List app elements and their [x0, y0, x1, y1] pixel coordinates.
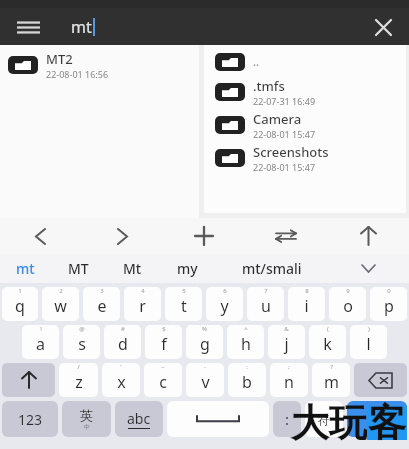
button[interactable]: 0	[370, 287, 407, 321]
staticText: b	[242, 371, 252, 393]
button[interactable]: $	[145, 325, 182, 359]
staticText: 9	[346, 287, 350, 295]
staticText: l	[366, 333, 371, 355]
staticText: Screenshots	[253, 143, 329, 161]
button[interactable]: Clear search	[366, 10, 400, 44]
button[interactable]: 2	[42, 287, 79, 321]
staticText: v	[201, 371, 210, 393]
staticText: '	[120, 363, 122, 371]
button[interactable]: Shift	[2, 363, 55, 397]
staticText: Camera	[253, 110, 302, 128]
staticText: i	[304, 295, 309, 317]
button[interactable]: mt	[0, 254, 50, 283]
button[interactable]: (	[309, 325, 346, 359]
staticText: 3	[100, 287, 104, 295]
staticText: y	[220, 295, 229, 317]
button[interactable]: Backspace	[354, 363, 407, 397]
staticText: 1	[18, 287, 22, 295]
button[interactable]: 7	[247, 287, 284, 321]
button[interactable]: @	[63, 325, 100, 359]
button[interactable]: MT2	[0, 48, 199, 81]
button[interactable]: mt/smali	[216, 254, 328, 283]
button[interactable]: 8	[288, 287, 325, 321]
staticText: 2	[59, 287, 63, 295]
button[interactable]: ^	[227, 325, 264, 359]
button[interactable]: Up	[327, 218, 409, 254]
button[interactable]: Camera	[204, 108, 406, 141]
staticText: 7	[264, 287, 268, 295]
button[interactable]: Screenshots	[204, 141, 406, 174]
button[interactable]: New	[163, 218, 245, 254]
button[interactable]: Swap panels	[245, 218, 327, 254]
staticText: 22-08-01 15:47	[253, 128, 316, 140]
button[interactable]: :	[228, 363, 266, 397]
staticText: ;	[288, 363, 290, 371]
staticText: 客	[368, 399, 406, 447]
staticText: r	[139, 295, 146, 317]
staticText: q	[15, 295, 25, 317]
button[interactable]: ?	[312, 363, 350, 397]
button[interactable]: 4	[124, 287, 161, 321]
button[interactable]: 6	[206, 287, 243, 321]
button[interactable]: .tmfs	[204, 75, 406, 108]
staticText: 22-07-31 16:49	[253, 95, 316, 107]
staticText: MT2	[46, 50, 73, 68]
button[interactable]: 5	[165, 287, 202, 321]
button[interactable]: #	[104, 325, 141, 359]
staticText: ..	[253, 54, 259, 69]
staticText: 8	[305, 287, 309, 295]
staticText: 中	[84, 423, 90, 431]
staticText: /	[77, 363, 80, 371]
staticText: ^	[244, 325, 248, 333]
button[interactable]: ;	[270, 363, 308, 397]
button[interactable]: Symbols	[305, 401, 343, 437]
staticText: .tmfs	[253, 77, 285, 95]
staticText: w	[54, 295, 67, 317]
button[interactable]: %	[186, 325, 223, 359]
staticText: (	[327, 325, 329, 333]
staticText: 5	[182, 287, 186, 295]
button[interactable]: )	[350, 325, 387, 359]
staticText: x	[117, 371, 126, 393]
button[interactable]: &	[268, 325, 305, 359]
staticText: -	[204, 363, 206, 371]
button[interactable]: 123	[2, 401, 58, 437]
button[interactable]: -	[186, 363, 224, 397]
staticText: a	[36, 333, 45, 355]
button[interactable]: Space	[167, 401, 269, 437]
button[interactable]: 9	[329, 287, 366, 321]
staticText: z	[75, 371, 83, 393]
staticText: #	[121, 325, 125, 333]
staticText: mt	[71, 16, 92, 38]
button[interactable]: /	[59, 363, 98, 397]
button[interactable]: :	[273, 401, 301, 437]
button[interactable]: Menu	[11, 10, 45, 44]
staticText: my	[177, 259, 198, 278]
button[interactable]: '	[102, 363, 140, 397]
button[interactable]: my	[158, 254, 216, 283]
button[interactable]: ..	[204, 48, 406, 75]
button[interactable]: 1	[2, 287, 38, 321]
button[interactable]: 3	[83, 287, 120, 321]
button[interactable]: Mt	[106, 254, 158, 283]
button[interactable]: Forward	[81, 218, 163, 254]
staticText: p	[384, 295, 394, 317]
staticText: 22-08-01 15:47	[253, 161, 316, 173]
staticText: &	[284, 325, 289, 333]
staticText: n	[284, 371, 294, 393]
button[interactable]: Back	[0, 218, 81, 254]
button[interactable]: ~	[144, 363, 182, 397]
staticText: o	[343, 295, 353, 317]
staticText: Mt	[123, 259, 142, 278]
staticText: @	[79, 325, 85, 333]
staticText: s	[78, 333, 86, 355]
staticText: 22-08-01 16:56	[46, 68, 109, 80]
staticText: ?	[330, 363, 333, 371]
button[interactable]: Enter	[347, 401, 407, 437]
staticText: 6	[223, 287, 227, 295]
button[interactable]: MT	[50, 254, 106, 283]
button[interactable]: !	[22, 325, 59, 359]
button[interactable]: Switch language	[62, 401, 111, 437]
button[interactable]: More suggestions	[328, 254, 409, 283]
button[interactable]: abc	[115, 401, 163, 437]
